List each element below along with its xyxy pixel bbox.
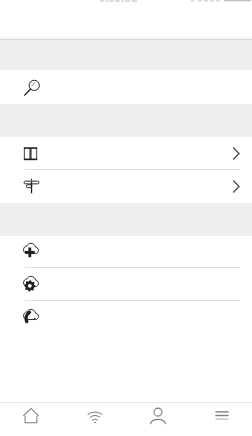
button[interactable]: Home <box>0 403 63 436</box>
button[interactable]: Menu <box>189 403 252 436</box>
button[interactable]: Cloud off <box>0 301 252 333</box>
button[interactable]: Search <box>0 70 252 104</box>
other: Search <box>22 79 39 96</box>
button[interactable]: Wi-Fi <box>63 403 126 436</box>
button[interactable]: Guide <box>0 137 252 169</box>
button[interactable]: Backup <box>0 236 252 267</box>
button[interactable]: Cloud settings <box>0 268 252 300</box>
button[interactable]: Directions <box>0 170 252 203</box>
button[interactable]: Profile <box>126 403 189 436</box>
